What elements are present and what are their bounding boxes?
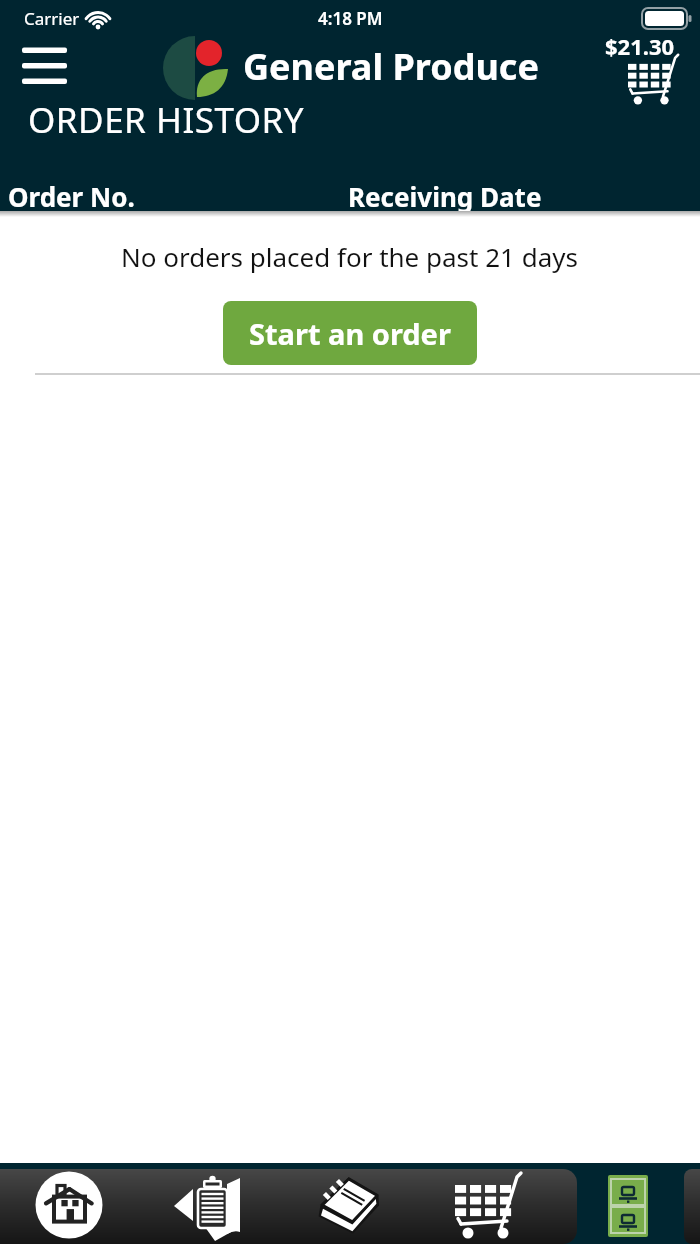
staticText: General Produce [243,42,539,90]
staticText: $21.30 [605,31,675,57]
button[interactable] [172,1172,244,1244]
button[interactable] [305,1170,390,1244]
staticText: Carrier [24,7,80,30]
staticText: Start an order [249,314,451,353]
staticText: No orders placed for the past 21 days [121,239,579,274]
staticText: Receiving Date [348,179,542,214]
button[interactable] [598,1172,658,1242]
staticText: ORDER HISTORY [28,96,305,140]
button[interactable] [18,42,72,90]
staticText: Order No. [8,179,135,214]
button[interactable] [35,1171,103,1239]
button[interactable] [600,32,696,108]
button[interactable]: Start an order [223,301,477,365]
staticText: 4:18 PM [318,7,383,30]
button[interactable] [453,1170,525,1242]
